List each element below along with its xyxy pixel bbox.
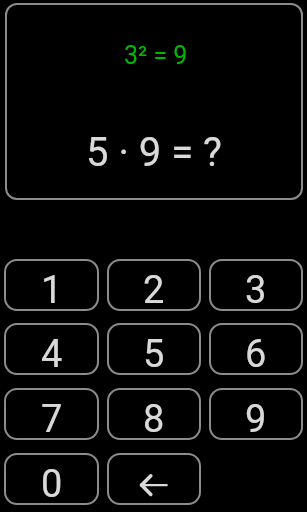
staticText: 8 xyxy=(143,397,165,442)
button[interactable]: 9 xyxy=(209,388,303,440)
staticText: 4 xyxy=(41,332,63,377)
button[interactable]: 7 xyxy=(4,388,99,440)
button[interactable]: 4 xyxy=(4,323,99,375)
button[interactable]: 0 xyxy=(4,453,99,505)
button[interactable]: 3 xyxy=(209,259,303,311)
staticText: 5 xyxy=(143,332,165,377)
staticText: 3² = 9 xyxy=(124,41,188,70)
button[interactable]: 1 xyxy=(4,259,99,311)
button[interactable]: 2 xyxy=(107,259,201,311)
staticText: 9 xyxy=(245,397,267,442)
staticText: 3 xyxy=(245,268,267,313)
button[interactable] xyxy=(107,453,201,505)
button[interactable]: 8 xyxy=(107,388,201,440)
button[interactable]: 5 xyxy=(107,323,201,375)
staticText: 1 xyxy=(41,268,63,313)
staticText: 5 · 9 = ? xyxy=(86,129,222,176)
staticText: 2 xyxy=(143,268,165,313)
staticText: 7 xyxy=(41,397,63,442)
staticText: 6 xyxy=(245,332,267,377)
staticText: 0 xyxy=(41,462,63,507)
button[interactable]: 6 xyxy=(209,323,303,375)
